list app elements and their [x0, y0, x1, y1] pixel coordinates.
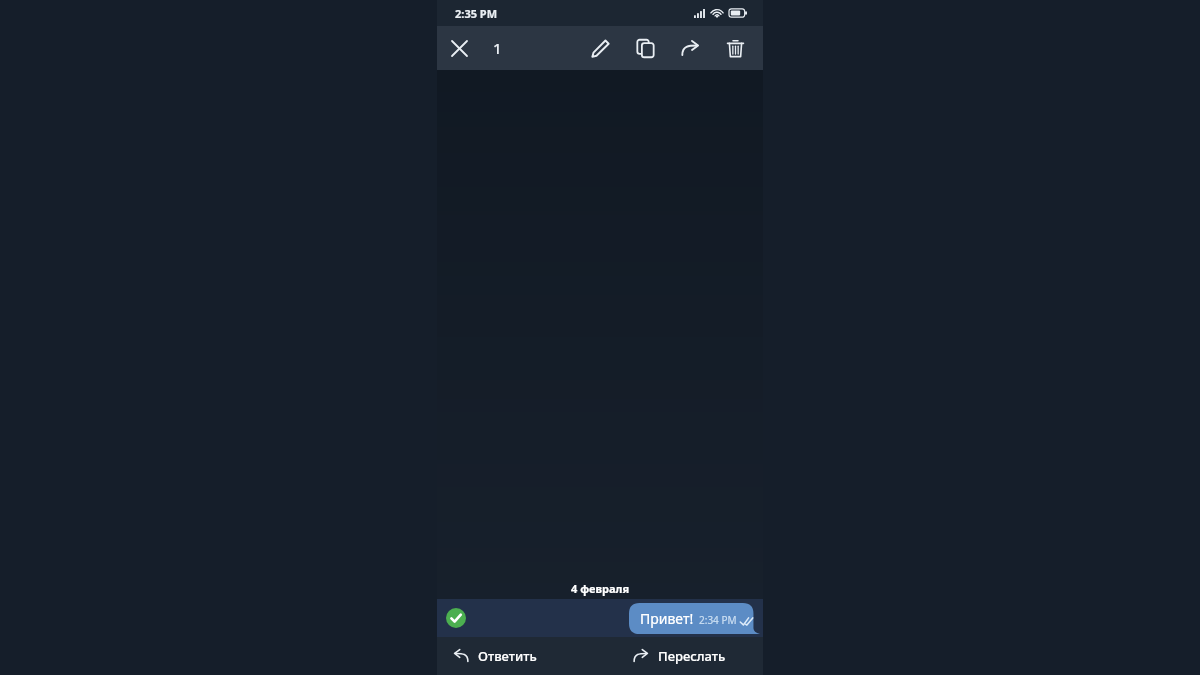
staticText: 1 — [493, 38, 502, 58]
staticText: 2:35 PM — [455, 6, 498, 21]
button[interactable]: Forward — [668, 26, 713, 70]
button[interactable]: Привет! — [437, 599, 763, 637]
staticText: 2:34 PM — [699, 613, 737, 627]
button[interactable]: Ответить — [437, 637, 600, 675]
staticText: Ответить — [478, 647, 537, 665]
button[interactable]: Переслать — [600, 637, 763, 675]
staticText: 4 февраля — [571, 581, 630, 596]
staticText: Переслать — [658, 647, 726, 665]
staticText: Привет! — [640, 609, 694, 628]
button[interactable]: Close selection — [437, 26, 481, 70]
button[interactable]: Edit — [578, 26, 623, 70]
button[interactable]: Copy — [623, 26, 668, 70]
button[interactable]: Delete — [713, 26, 758, 70]
